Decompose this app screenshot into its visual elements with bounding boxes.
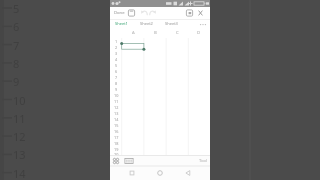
button[interactable]: Home xyxy=(154,166,166,180)
button[interactable]: Recents xyxy=(126,166,138,180)
button[interactable]: Cell grid xyxy=(111,155,121,166)
button[interactable]: Sheet3 xyxy=(164,19,178,28)
staticText: 13 xyxy=(13,147,26,162)
staticText: Sheet2 xyxy=(140,21,153,26)
staticText: 2 xyxy=(115,45,118,50)
staticText: 12 xyxy=(114,105,119,110)
staticText: 9 xyxy=(115,87,118,92)
button[interactable]: Back xyxy=(182,166,194,180)
staticText: 19 xyxy=(114,147,119,152)
staticText: A xyxy=(132,30,135,36)
staticText: 7 xyxy=(115,75,118,80)
staticText: 14 xyxy=(114,117,119,122)
staticText: 15 xyxy=(114,123,119,128)
button[interactable]: Redo xyxy=(147,7,158,19)
staticText: 11 xyxy=(13,111,26,126)
button[interactable]: Sheet1 xyxy=(114,19,128,28)
staticText: Sheet3 xyxy=(165,21,178,26)
button[interactable]: Print xyxy=(184,7,195,19)
staticText: 4 xyxy=(115,57,118,62)
staticText: 6 xyxy=(115,69,118,74)
button[interactable]: Undo xyxy=(139,7,150,19)
staticText: C xyxy=(176,30,179,36)
staticText: D xyxy=(197,30,201,36)
button[interactable]: Keyboard xyxy=(124,155,134,166)
staticText: 17 xyxy=(114,135,119,140)
staticText: 8 xyxy=(115,81,118,86)
staticText: Done xyxy=(114,10,125,16)
staticText: B xyxy=(154,30,157,36)
staticText: 16 xyxy=(114,129,119,134)
staticText: 13 xyxy=(114,111,119,116)
staticText: Tool xyxy=(199,158,208,164)
staticText: 20 xyxy=(114,152,119,155)
staticText: 14 xyxy=(13,166,26,180)
button[interactable]: Close xyxy=(195,7,206,19)
staticText: Sheet1 xyxy=(115,21,128,26)
staticText: 5 xyxy=(13,1,20,16)
staticText: 1 xyxy=(115,39,118,44)
staticText: 10 xyxy=(13,93,26,108)
button[interactable]: Save xyxy=(126,7,137,19)
staticText: 6 xyxy=(13,19,20,34)
staticText: 9 xyxy=(13,74,20,89)
staticText: 18 xyxy=(114,141,119,146)
staticText: 12 xyxy=(13,129,26,144)
button[interactable]: Tool xyxy=(197,155,209,166)
staticText: 7 xyxy=(13,38,20,53)
staticText: 10 xyxy=(114,93,119,98)
button[interactable]: Sheet2 xyxy=(139,19,153,28)
staticText: 3 xyxy=(115,51,118,56)
button[interactable]: Done xyxy=(114,7,125,19)
staticText: 5 xyxy=(115,63,118,68)
staticText: 8 xyxy=(13,56,20,71)
staticText: 11 xyxy=(114,99,119,104)
button[interactable]: More sheets xyxy=(198,19,208,28)
